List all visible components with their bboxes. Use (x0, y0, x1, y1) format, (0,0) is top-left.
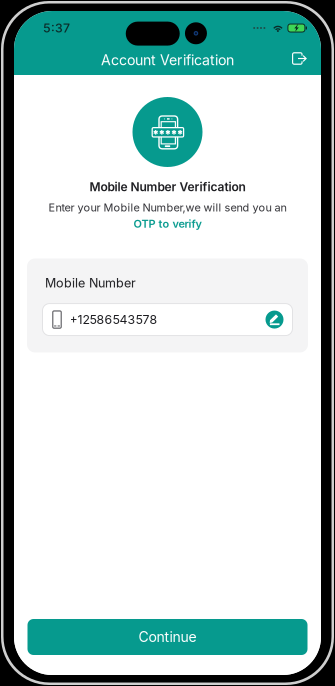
staticText: Mobile Number (45, 275, 136, 291)
button[interactable]: Sign out (285, 47, 313, 73)
staticText: +12586543578 (69, 312, 157, 327)
staticText: Continue (138, 628, 196, 645)
button[interactable]: Continue (27, 619, 307, 655)
staticText: Account Verification (101, 51, 234, 68)
staticText: Enter your Mobile Number,we will send yo… (48, 201, 286, 214)
button[interactable]: Edit phone number (263, 309, 285, 331)
staticText: 5:37 (43, 21, 70, 35)
staticText: OTP to verify (133, 217, 201, 230)
staticText: Mobile Number Verification (89, 179, 245, 194)
